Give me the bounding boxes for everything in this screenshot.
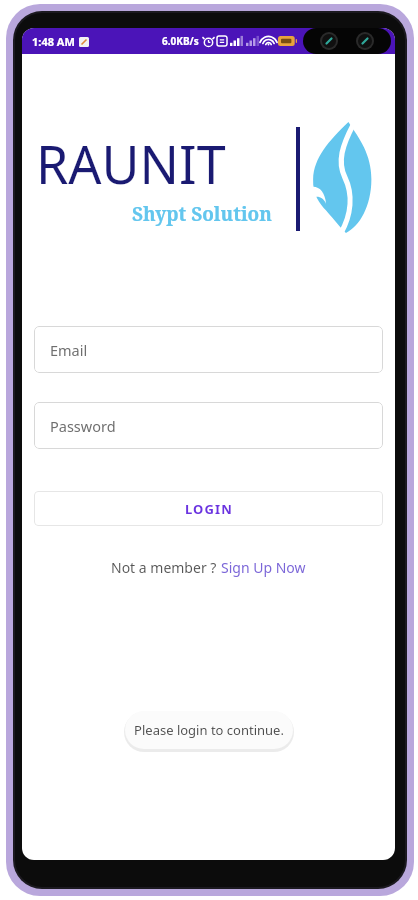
staticText: 6.0KB/s — [162, 34, 199, 48]
staticText: Not a member ? — [111, 558, 221, 577]
staticText: RAUNIT — [36, 128, 226, 199]
button[interactable]: Email — [34, 326, 383, 373]
staticText: Sign Up Now — [221, 558, 306, 577]
staticText: Shypt Solution — [132, 201, 272, 227]
button[interactable]: Sign Up Now — [221, 558, 306, 577]
staticText: 1:48 AM — [32, 34, 75, 49]
staticText: Please login to continue. — [134, 721, 284, 739]
staticText: Password — [50, 416, 116, 436]
staticText: LOGIN — [185, 500, 233, 518]
button[interactable]: Password — [34, 402, 383, 449]
staticText: Email — [50, 340, 88, 360]
button[interactable]: LOGIN — [34, 491, 383, 526]
